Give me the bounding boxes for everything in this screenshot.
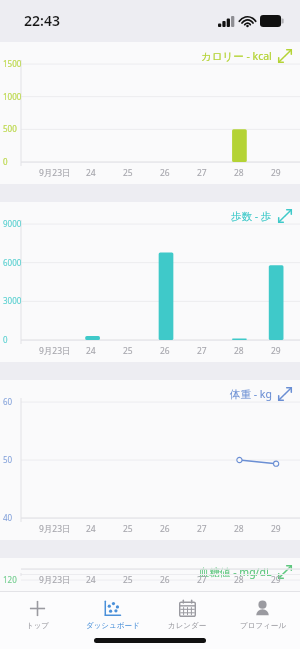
- button[interactable]: 体重 - kg: [0, 380, 300, 540]
- staticText: 60: [3, 396, 13, 407]
- staticText: 25: [123, 574, 133, 586]
- staticText: トップ: [26, 621, 50, 630]
- staticText: 6000: [3, 257, 22, 268]
- button[interactable]: トップ: [0, 592, 75, 636]
- staticText: 29: [271, 523, 281, 535]
- staticText: 25: [123, 523, 133, 535]
- staticText: 26: [160, 523, 170, 535]
- staticText: 歩数 - 歩: [231, 209, 272, 223]
- staticText: 27: [197, 345, 207, 357]
- staticText: 27: [197, 574, 207, 586]
- staticText: 9000: [3, 218, 22, 229]
- button[interactable]: Expand chart: [276, 47, 294, 65]
- staticText: 26: [160, 167, 170, 179]
- staticText: 24: [86, 345, 96, 357]
- staticText: 9月23日: [39, 167, 71, 179]
- button[interactable]: Expand chart: [276, 207, 294, 225]
- staticText: 29: [271, 167, 281, 179]
- staticText: 120: [3, 574, 17, 585]
- staticText: 24: [86, 574, 96, 586]
- staticText: 28: [234, 167, 244, 179]
- button[interactable]: Expand chart: [276, 385, 294, 403]
- staticText: 28: [234, 523, 244, 535]
- staticText: 9月23日: [39, 345, 71, 357]
- staticText: 体重 - kg: [230, 387, 272, 401]
- staticText: 9月23日: [39, 574, 71, 586]
- staticText: 27: [197, 167, 207, 179]
- staticText: 28: [234, 574, 244, 586]
- staticText: 1000: [3, 91, 22, 102]
- staticText: 9月23日: [39, 523, 71, 535]
- staticText: 26: [160, 574, 170, 586]
- staticText: 24: [86, 523, 96, 535]
- staticText: 0: [3, 156, 8, 167]
- staticText: 3000: [3, 295, 22, 306]
- staticText: 29: [271, 574, 281, 586]
- button[interactable]: 歩数 - 歩: [0, 202, 300, 362]
- button[interactable]: プロフィール: [225, 592, 300, 636]
- staticText: 27: [197, 523, 207, 535]
- staticText: ダッシュボード: [86, 621, 140, 630]
- button[interactable]: Expand chart: [276, 563, 294, 581]
- staticText: 24: [86, 167, 96, 179]
- staticText: 28: [234, 345, 244, 357]
- staticText: カレンダー: [168, 621, 207, 630]
- button[interactable]: カレンダー: [150, 592, 225, 636]
- button[interactable]: カロリー - kcal: [0, 42, 300, 184]
- staticText: 50: [3, 454, 13, 465]
- staticText: カロリー - kcal: [201, 49, 272, 63]
- staticText: 25: [123, 167, 133, 179]
- button[interactable]: ダッシュボード: [75, 592, 150, 636]
- staticText: 0: [3, 334, 8, 345]
- staticText: 25: [123, 345, 133, 357]
- button[interactable]: 血糖値 - mg/dL: [0, 558, 300, 591]
- staticText: 26: [160, 345, 170, 357]
- staticText: プロフィール: [240, 621, 286, 630]
- staticText: 500: [3, 123, 17, 134]
- staticText: 22:43: [24, 11, 60, 30]
- staticText: 1500: [3, 58, 22, 69]
- staticText: 40: [3, 512, 13, 523]
- staticText: 血糖値 - mg/dL: [199, 565, 272, 579]
- staticText: 29: [271, 345, 281, 357]
